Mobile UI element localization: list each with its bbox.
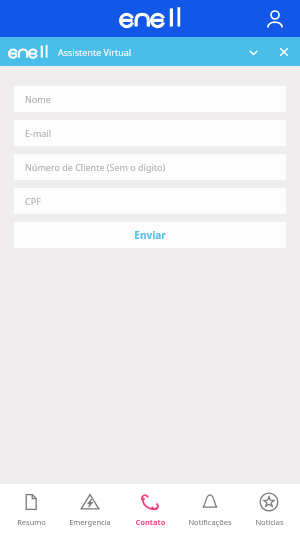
button[interactable]: Notícias — [240, 484, 298, 533]
staticText: Número de Cliente (Sem o dígito) — [25, 161, 166, 173]
button[interactable]: Enviar — [14, 222, 286, 248]
button[interactable]: Nome — [14, 86, 286, 112]
button[interactable]: CPF — [14, 188, 286, 214]
button[interactable]: Número de Cliente (Sem o dígito) — [14, 154, 286, 180]
staticText: Enviar — [134, 228, 166, 242]
staticText: Contato — [135, 517, 166, 527]
staticText: Emergencia — [69, 517, 111, 527]
button[interactable]: Emergencia — [61, 484, 119, 533]
button[interactable]: E-mail — [14, 120, 286, 146]
staticText: Nome — [25, 93, 51, 105]
staticText: Resumo — [17, 517, 46, 527]
staticText: Notificações — [188, 517, 232, 527]
button[interactable]: Notificações — [181, 484, 239, 533]
button[interactable]: Contato — [121, 484, 179, 533]
staticText: Notícias — [255, 517, 284, 527]
staticText: CPF — [25, 195, 41, 207]
staticText: Assistente Virtual — [58, 46, 132, 58]
button[interactable]: Resumo — [2, 484, 60, 533]
button[interactable]: Fechar — [271, 39, 297, 65]
button[interactable]: Minimizar — [240, 39, 266, 65]
staticText: E-mail — [25, 127, 52, 139]
button[interactable]: Conta — [258, 2, 292, 36]
